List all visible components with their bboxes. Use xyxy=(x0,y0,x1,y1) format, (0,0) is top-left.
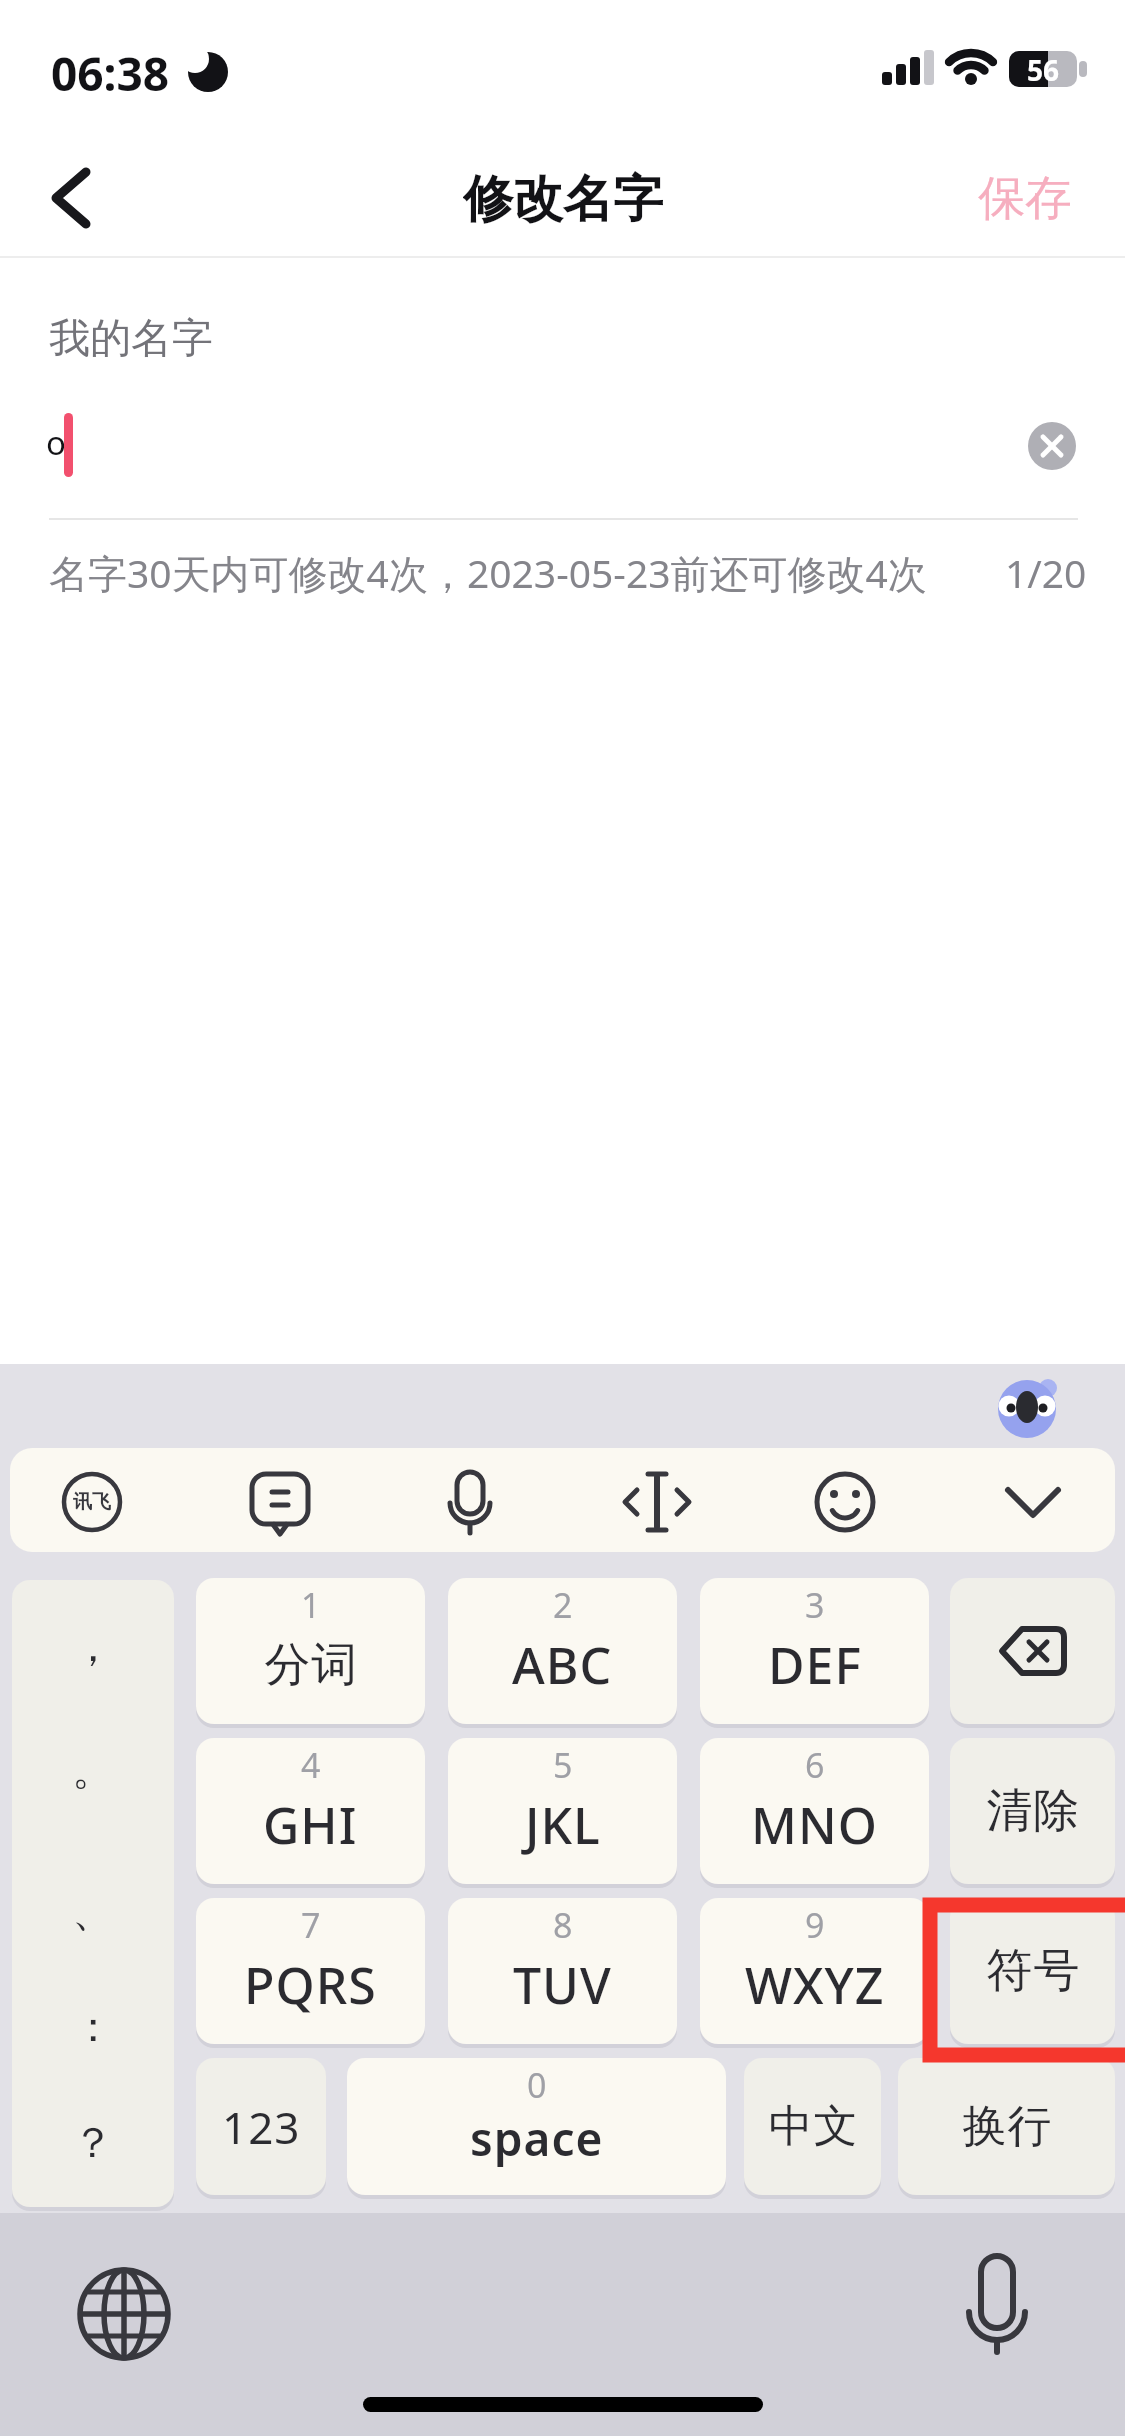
staticText: 换行 xyxy=(962,2099,1052,2154)
button[interactable] xyxy=(950,1578,1115,1724)
button[interactable]: 2 xyxy=(448,1578,677,1724)
staticText: JKL xyxy=(525,1791,601,1859)
button[interactable]: 0 xyxy=(347,2058,726,2195)
staticText: 修改名字 xyxy=(463,168,663,228)
staticText: 、 xyxy=(72,1886,114,1939)
button[interactable]: 3 xyxy=(700,1578,929,1724)
staticText: 1/20 xyxy=(1005,546,1087,599)
button[interactable]: 9 xyxy=(700,1898,929,2044)
staticText: TUV xyxy=(513,1951,612,2019)
button[interactable]: 保存 xyxy=(955,160,1095,236)
staticText: 符号 xyxy=(986,1942,1080,2000)
staticText: 1 xyxy=(301,1582,321,1628)
button[interactable]: 清除 xyxy=(950,1738,1115,1884)
staticText: 3 xyxy=(805,1582,825,1628)
button[interactable]: ， xyxy=(12,1580,174,2207)
staticText: 06:38 xyxy=(51,42,170,105)
button[interactable]: 讯飞 xyxy=(50,1460,134,1544)
button[interactable] xyxy=(36,156,106,240)
staticText: 中文 xyxy=(768,2099,858,2154)
button[interactable] xyxy=(428,1460,512,1544)
button[interactable]: 1 xyxy=(196,1578,425,1724)
button[interactable]: 4 xyxy=(196,1738,425,1884)
staticText: space xyxy=(470,2107,604,2170)
button[interactable]: 符号 xyxy=(950,1898,1115,2044)
staticText: o xyxy=(46,420,66,465)
button[interactable]: 5 xyxy=(448,1738,677,1884)
staticText: ： xyxy=(72,2001,114,2054)
button[interactable]: 中文 xyxy=(744,2058,881,2195)
staticText: 我的名字 xyxy=(49,313,213,365)
button[interactable]: 6 xyxy=(700,1738,929,1884)
button[interactable]: 7 xyxy=(196,1898,425,2044)
staticText: 0 xyxy=(527,2062,547,2108)
button[interactable] xyxy=(803,1460,887,1544)
staticText: 保存 xyxy=(978,169,1072,228)
staticText: GHI xyxy=(263,1791,358,1859)
button[interactable] xyxy=(615,1460,699,1544)
staticText: ？ xyxy=(72,2117,114,2170)
staticText: 。 xyxy=(72,1744,114,1797)
staticText: 8 xyxy=(553,1902,573,1948)
button[interactable] xyxy=(1028,422,1076,470)
staticText: ABC xyxy=(512,1631,613,1699)
button[interactable] xyxy=(238,1460,322,1544)
staticText: 分词 xyxy=(264,1636,358,1694)
staticText: 5 xyxy=(553,1742,573,1788)
button[interactable] xyxy=(70,2260,178,2368)
staticText: 123 xyxy=(222,2097,301,2157)
button[interactable]: 123 xyxy=(196,2058,326,2195)
staticText: 6 xyxy=(805,1742,825,1788)
staticText: DEF xyxy=(768,1631,862,1699)
button[interactable] xyxy=(991,1460,1075,1544)
button[interactable]: 8 xyxy=(448,1898,677,2044)
staticText: 2 xyxy=(553,1582,573,1628)
staticText: 4 xyxy=(301,1742,321,1788)
staticText: WXYZ xyxy=(745,1951,885,2019)
staticText: 名字30天内可修改4次，2023-05-23前还可修改4次 xyxy=(49,546,927,599)
button[interactable]: 换行 xyxy=(898,2058,1115,2195)
staticText: 清除 xyxy=(986,1782,1080,1840)
staticText: 9 xyxy=(805,1902,825,1948)
staticText: 7 xyxy=(301,1902,321,1948)
staticText: ， xyxy=(72,1621,114,1674)
button[interactable] xyxy=(943,2252,1051,2360)
staticText: PQRS xyxy=(244,1951,377,2019)
staticText: MNO xyxy=(751,1791,878,1859)
staticText: 56 xyxy=(1027,51,1060,87)
staticText: 讯飞 xyxy=(73,1490,111,1514)
